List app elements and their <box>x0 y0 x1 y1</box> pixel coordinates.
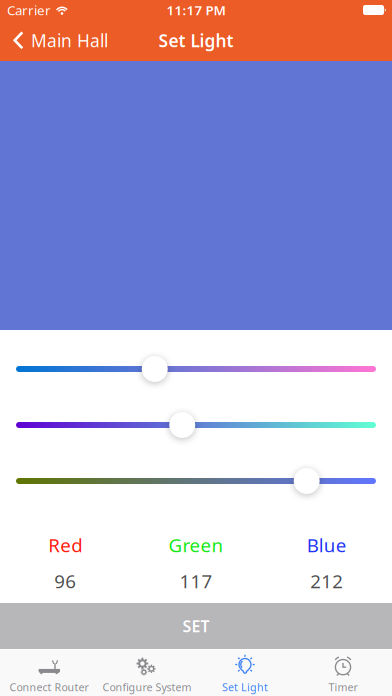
button[interactable]: Configure System <box>98 650 196 696</box>
staticText: Set Light <box>222 680 268 694</box>
button[interactable]: Set Light <box>196 650 294 696</box>
staticText: Blue <box>307 533 347 557</box>
staticText: Carrier <box>7 1 51 19</box>
button[interactable]: Main Hall <box>0 23 118 58</box>
staticText: Timer <box>328 680 357 694</box>
staticText: SET <box>182 615 209 637</box>
staticText: 212 <box>310 569 343 593</box>
staticText: Set Light <box>158 29 233 52</box>
staticText: Connect Router <box>9 680 88 694</box>
button[interactable]: SET <box>0 603 392 649</box>
staticText: 117 <box>179 569 212 593</box>
staticText: 11:17 PM <box>166 1 225 19</box>
staticText: Main Hall <box>31 29 108 52</box>
staticText: 96 <box>54 569 76 593</box>
staticText: Green <box>168 533 223 557</box>
button[interactable]: Connect Router <box>0 650 98 696</box>
staticText: Configure System <box>102 680 191 694</box>
staticText: Red <box>48 533 82 557</box>
button[interactable]: Timer <box>294 650 392 696</box>
